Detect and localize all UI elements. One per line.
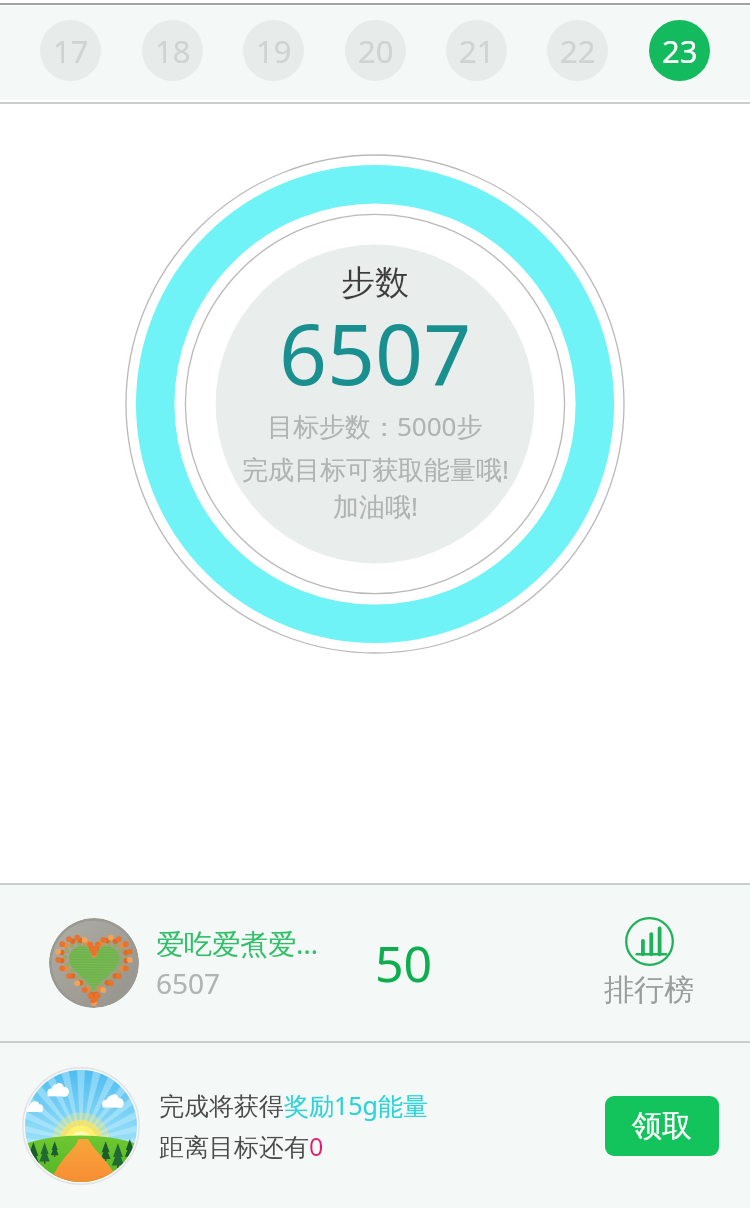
staticText: 6507 xyxy=(279,295,472,409)
staticText: 距离目标还有0 xyxy=(159,1129,324,1163)
staticText: 23 xyxy=(662,30,698,72)
staticText: 完成将获得奖励15g能量 xyxy=(159,1088,428,1122)
staticText: 17 xyxy=(53,30,89,72)
button[interactable]: 步数进度 xyxy=(125,154,625,654)
button[interactable]: 17 xyxy=(40,20,101,81)
staticText: 18 xyxy=(155,30,191,72)
staticText: 领取 xyxy=(632,1107,692,1145)
button[interactable]: 排行榜 xyxy=(604,917,694,1009)
staticText: 爱吃爱煮爱… xyxy=(156,924,319,962)
button[interactable]: 21 xyxy=(446,20,507,81)
button[interactable]: 18 xyxy=(142,20,203,81)
button[interactable]: 20 xyxy=(345,20,406,81)
button[interactable]: 22 xyxy=(547,20,608,81)
staticText: 步数 xyxy=(341,261,409,304)
staticText: 完成目标可获取能量哦! xyxy=(242,451,509,487)
button[interactable]: 23 xyxy=(649,20,710,81)
button[interactable]: 19 xyxy=(243,20,304,81)
staticText: 50 xyxy=(375,929,433,997)
staticText: 19 xyxy=(256,30,292,72)
button[interactable]: 领取 xyxy=(605,1096,719,1156)
staticText: 6507 xyxy=(156,964,221,1002)
button[interactable]: 爱吃爱煮爱… xyxy=(0,883,750,1043)
staticText: 目标步数：5000步 xyxy=(267,408,483,444)
staticText: 20 xyxy=(358,30,394,72)
staticText: 加油哦! xyxy=(333,488,418,524)
staticText: 21 xyxy=(459,30,495,72)
staticText: 排行榜 xyxy=(604,971,694,1009)
staticText: 22 xyxy=(560,30,596,72)
